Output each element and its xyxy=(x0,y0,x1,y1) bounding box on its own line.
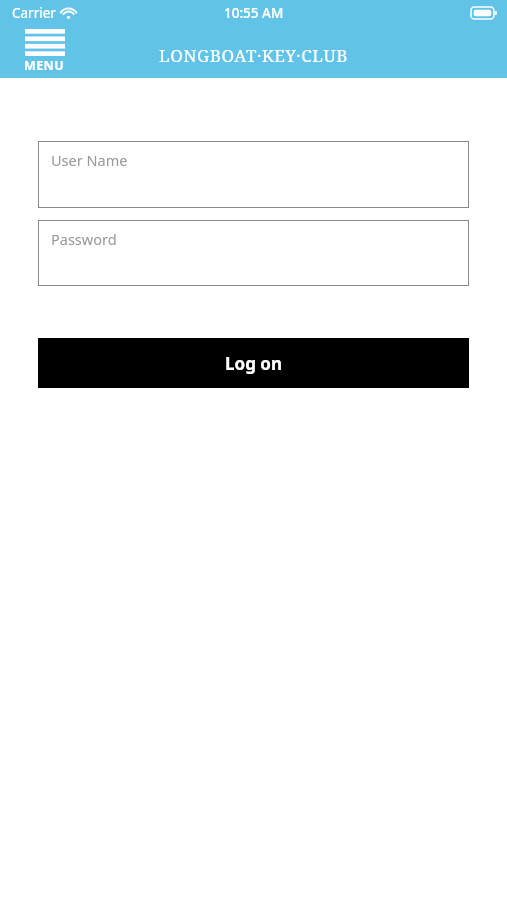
other: Battery full xyxy=(471,7,497,19)
staticText: 10:55 AM xyxy=(224,4,284,22)
staticText: Carrier xyxy=(12,4,56,22)
staticText: Password xyxy=(51,229,117,249)
staticText: Log on xyxy=(225,352,282,375)
button[interactable]: User Name xyxy=(38,141,469,208)
button[interactable]: Password xyxy=(38,220,469,286)
button[interactable]: Open navigation menu xyxy=(22,28,67,75)
staticText: LONGBOAT·KEY·CLUB xyxy=(159,44,348,67)
staticText: MENU xyxy=(24,57,65,74)
button[interactable]: Log on xyxy=(38,338,469,388)
other: Wi-Fi signal xyxy=(61,7,76,19)
staticText: User Name xyxy=(51,150,128,170)
